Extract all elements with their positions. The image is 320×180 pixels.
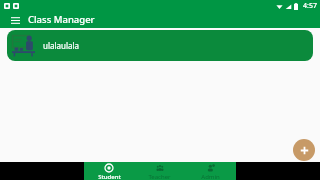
staticText: 4:57 bbox=[303, 1, 317, 11]
button[interactable]: Student bbox=[84, 162, 134, 180]
staticText: Student bbox=[98, 173, 121, 180]
staticText: ulalaulala bbox=[43, 40, 80, 51]
button[interactable]: Teacher bbox=[134, 162, 185, 180]
button[interactable]: Add class bbox=[293, 139, 315, 161]
button[interactable]: Admin bbox=[185, 162, 236, 180]
staticText: Teacher bbox=[148, 173, 171, 180]
staticText: Class Manager bbox=[28, 13, 95, 26]
staticText: Admin bbox=[201, 173, 220, 180]
button[interactable]: ulalaulala bbox=[7, 30, 313, 61]
button[interactable]: Open navigation menu bbox=[7, 12, 23, 28]
